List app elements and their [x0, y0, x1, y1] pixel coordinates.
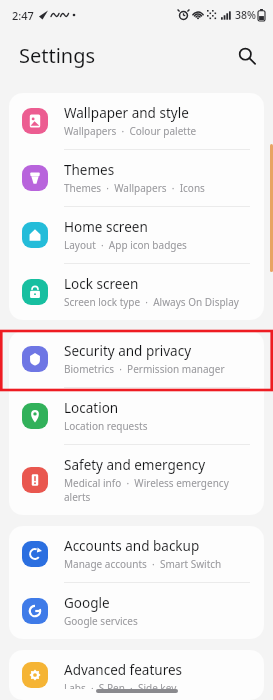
staticText: Location [64, 399, 119, 417]
button[interactable]: Safety and emergency [9, 445, 264, 515]
button[interactable]: Search [229, 38, 263, 72]
staticText: Wallpapers · Colour palette [64, 124, 197, 138]
staticText: Medical info · Wireless emergency alerts [64, 476, 250, 504]
staticText: Settings [19, 42, 96, 69]
staticText: Manage accounts · Smart Switch [64, 557, 222, 571]
staticText: 2:47 [12, 8, 34, 23]
button[interactable]: Accounts and backup [9, 526, 264, 583]
staticText: Themes · Wallpapers · Icons [64, 181, 205, 195]
staticText: Google services [64, 614, 138, 628]
button[interactable]: Security and privacy [9, 331, 264, 388]
button[interactable]: Home screen [9, 207, 264, 264]
staticText: Safety and emergency [64, 456, 206, 474]
staticText: Advanced features [64, 661, 183, 679]
staticText: Home screen [64, 218, 148, 236]
staticText: Google [64, 594, 110, 612]
staticText: Accounts and backup [64, 537, 200, 555]
button[interactable]: Wallpaper and style [9, 93, 264, 150]
staticText: Wallpaper and style [64, 104, 189, 122]
staticText: Labs · S Pen · Side key [64, 681, 177, 689]
staticText: Themes [64, 161, 115, 179]
button[interactable]: Location [9, 388, 264, 445]
staticText: Security and privacy [64, 342, 192, 360]
button[interactable]: Themes [9, 150, 264, 207]
staticText: Screen lock type · Always On Display [64, 295, 239, 309]
staticText: 38% [235, 8, 256, 22]
button[interactable]: Lock screen [9, 264, 264, 320]
staticText: Layout · App icon badges [64, 238, 187, 252]
staticText: Lock screen [64, 275, 139, 293]
staticText: Location requests [64, 419, 148, 433]
button[interactable]: Advanced features [9, 650, 264, 700]
staticText: Biometrics · Permission manager [64, 362, 225, 376]
button[interactable]: Google [9, 583, 264, 639]
